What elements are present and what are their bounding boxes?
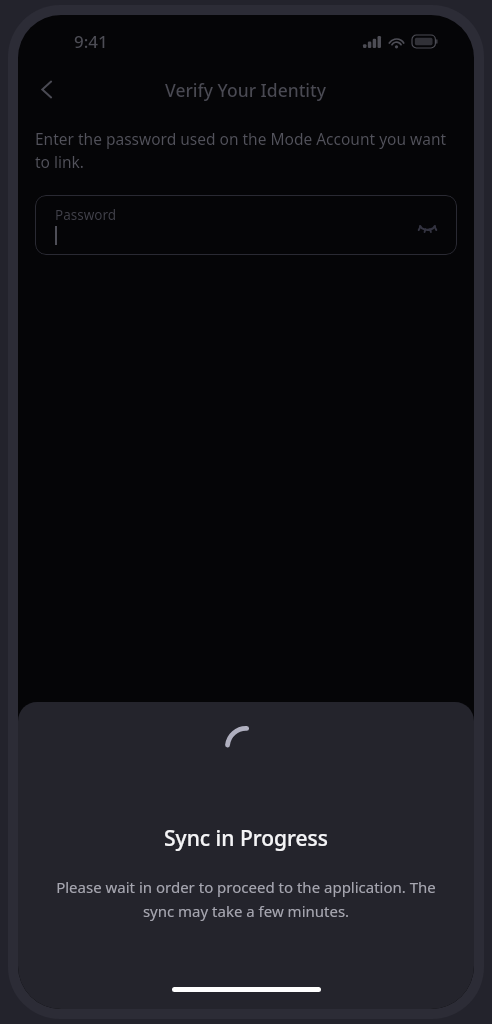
staticText: Sync in Progress	[164, 824, 328, 853]
button[interactable]: Show password	[407, 205, 447, 245]
staticText: Please wait in order to proceed to the a…	[40, 877, 452, 921]
staticText: 9:41	[74, 30, 108, 53]
staticText: Password	[55, 206, 117, 224]
button[interactable]: Back	[24, 68, 68, 111]
staticText: Verify Your Identity	[165, 78, 327, 102]
staticText: Enter the password used on the Mode Acco…	[35, 128, 457, 173]
button[interactable]: Password	[35, 195, 457, 255]
